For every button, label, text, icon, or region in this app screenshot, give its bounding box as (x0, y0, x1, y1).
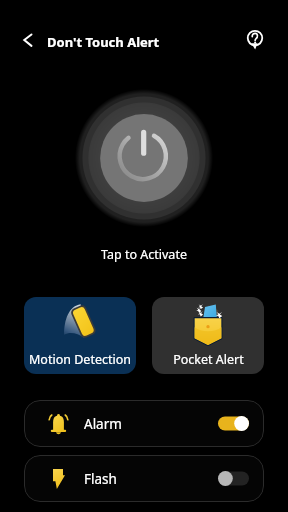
button[interactable]: Help (240, 24, 270, 54)
staticText: Tap to Activate (0, 246, 288, 263)
staticText: Alarm (84, 415, 122, 433)
staticText: Don't Touch Alert (47, 33, 160, 51)
button[interactable]: Flash (24, 455, 264, 502)
button[interactable]: Pocket Alert (152, 297, 264, 374)
button[interactable]: Alarm (24, 400, 264, 447)
button[interactable]: Motion Detection (24, 297, 136, 374)
button[interactable]: Activate (75, 89, 213, 227)
staticText: Flash (84, 470, 117, 488)
button[interactable]: Back (12, 24, 44, 56)
staticText: Pocket Alert (173, 351, 244, 368)
staticText: Motion Detection (29, 351, 131, 368)
